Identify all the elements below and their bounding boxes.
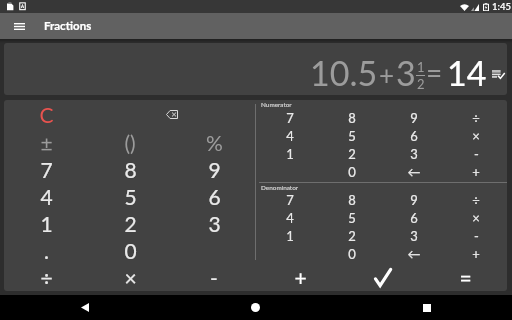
button[interactable]: 3 xyxy=(172,210,256,237)
button[interactable]: = xyxy=(424,264,507,291)
staticText: 9 xyxy=(410,192,418,208)
button[interactable]: 2 xyxy=(321,146,383,164)
button[interactable]: 3 xyxy=(383,228,445,246)
button[interactable]: ← xyxy=(383,164,445,182)
button[interactable]: 5 xyxy=(321,128,383,146)
button[interactable]: 5 xyxy=(321,210,383,228)
button[interactable]: 1 xyxy=(4,210,88,237)
staticText: 5 xyxy=(348,128,356,144)
staticText: - xyxy=(210,265,218,290)
button[interactable]: 5 xyxy=(88,183,172,210)
button[interactable]: Back xyxy=(0,295,170,320)
button[interactable]: () xyxy=(88,128,172,156)
staticText: 1 xyxy=(286,228,294,244)
button[interactable]: 2 xyxy=(88,210,172,237)
staticText: () xyxy=(124,130,136,155)
button[interactable]: 0 xyxy=(321,164,383,182)
staticText: ÷ xyxy=(472,110,480,126)
button[interactable]: × xyxy=(88,264,172,291)
button[interactable]: 7 xyxy=(259,192,321,210)
button[interactable]: + xyxy=(259,264,341,291)
button[interactable]: + xyxy=(445,164,507,182)
button[interactable]: Backspace xyxy=(88,100,256,128)
staticText: ÷ xyxy=(472,192,480,208)
staticText: 6 xyxy=(410,128,418,144)
staticText: 10.5 xyxy=(310,52,378,93)
button[interactable]: 0 xyxy=(321,246,383,264)
staticText: × xyxy=(472,128,480,144)
staticText: % xyxy=(206,130,223,155)
button[interactable]: - xyxy=(445,146,507,164)
staticText: 7 xyxy=(286,192,294,208)
button[interactable]: 9 xyxy=(172,156,256,183)
button[interactable]: 6 xyxy=(383,210,445,228)
button[interactable]: 8 xyxy=(321,192,383,210)
button[interactable]: ← xyxy=(383,246,445,264)
staticText: 9 xyxy=(410,110,418,126)
staticText: + xyxy=(472,164,480,180)
button[interactable]: 4 xyxy=(259,210,321,228)
button[interactable]: 1 xyxy=(259,228,321,246)
staticText: + xyxy=(379,59,395,90)
button[interactable]: 2 xyxy=(321,228,383,246)
button[interactable]: % xyxy=(172,128,256,156)
button[interactable]: Open navigation menu xyxy=(0,13,38,39)
button[interactable]: 4 xyxy=(4,183,88,210)
button[interactable]: - xyxy=(172,264,256,291)
button[interactable]: Home xyxy=(170,295,341,320)
staticText: ← xyxy=(407,246,421,262)
button[interactable]: × xyxy=(445,128,507,146)
staticText: 2 xyxy=(348,146,356,162)
button[interactable]: + xyxy=(445,246,507,264)
staticText: 4 xyxy=(40,184,53,209)
staticText: 6 xyxy=(410,210,418,226)
button[interactable]: 6 xyxy=(172,183,256,210)
button[interactable]: 8 xyxy=(88,156,172,183)
button[interactable]: 6 xyxy=(383,128,445,146)
button[interactable]: 4 xyxy=(259,128,321,146)
staticText: = xyxy=(459,265,472,290)
button[interactable]: 9 xyxy=(383,192,445,210)
staticText: 4 xyxy=(286,128,294,144)
staticText: + xyxy=(294,265,307,290)
staticText: Denominator xyxy=(261,184,299,192)
staticText: 2 xyxy=(124,211,137,236)
button[interactable]: Confirm xyxy=(341,264,424,291)
staticText: ÷ xyxy=(40,265,53,290)
button[interactable]: - xyxy=(445,228,507,246)
staticText: 4 xyxy=(286,210,294,226)
staticText: ± xyxy=(40,130,53,155)
button[interactable]: 1 xyxy=(259,146,321,164)
staticText: 7 xyxy=(286,110,294,126)
button[interactable]: × xyxy=(445,210,507,228)
button[interactable]: C xyxy=(4,100,88,128)
button[interactable]: 9 xyxy=(383,109,445,128)
staticText: + xyxy=(472,246,480,262)
staticText: 0 xyxy=(348,164,356,180)
staticText: 0 xyxy=(124,238,137,263)
staticText: 5 xyxy=(348,210,356,226)
button[interactable]: ÷ xyxy=(445,109,507,128)
button[interactable] xyxy=(172,237,256,264)
button[interactable]: ÷ xyxy=(445,192,507,210)
staticText: × xyxy=(124,265,137,290)
button[interactable]: ± xyxy=(4,128,88,156)
staticText: 14 xyxy=(447,52,487,93)
button[interactable]: 3 xyxy=(383,146,445,164)
staticText: 8 xyxy=(348,110,356,126)
button[interactable]: 7 xyxy=(4,156,88,183)
button[interactable]: Show history xyxy=(491,64,504,84)
button[interactable]: . xyxy=(4,237,88,264)
staticText: Numerator xyxy=(261,101,292,109)
button[interactable]: 7 xyxy=(259,109,321,128)
staticText: 8 xyxy=(124,157,137,182)
button[interactable]: 0 xyxy=(88,237,172,264)
button[interactable]: 8 xyxy=(321,109,383,128)
button[interactable]: Recent apps xyxy=(341,295,512,320)
staticText: 1 xyxy=(286,146,294,162)
button[interactable]: ÷ xyxy=(4,264,88,291)
staticText: = xyxy=(426,55,443,89)
staticText: 2 xyxy=(348,228,356,244)
